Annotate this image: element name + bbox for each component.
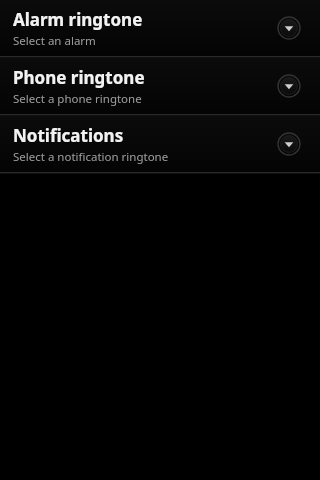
staticText: Select an alarm: [13, 33, 96, 49]
button[interactable]: Open Alarm ringtone options: [277, 16, 301, 40]
button[interactable]: Notifications: [0, 116, 320, 172]
button[interactable]: Open Notifications options: [277, 132, 301, 156]
staticText: Alarm ringtone: [13, 8, 143, 31]
staticText: Select a phone ringtone: [13, 91, 142, 107]
button[interactable]: Phone ringtone: [0, 58, 320, 114]
staticText: Phone ringtone: [13, 66, 145, 89]
button[interactable]: Open Phone ringtone options: [277, 74, 301, 98]
staticText: Select a notification ringtone: [13, 149, 169, 165]
staticText: Notifications: [13, 124, 124, 147]
button[interactable]: Alarm ringtone: [0, 0, 320, 56]
